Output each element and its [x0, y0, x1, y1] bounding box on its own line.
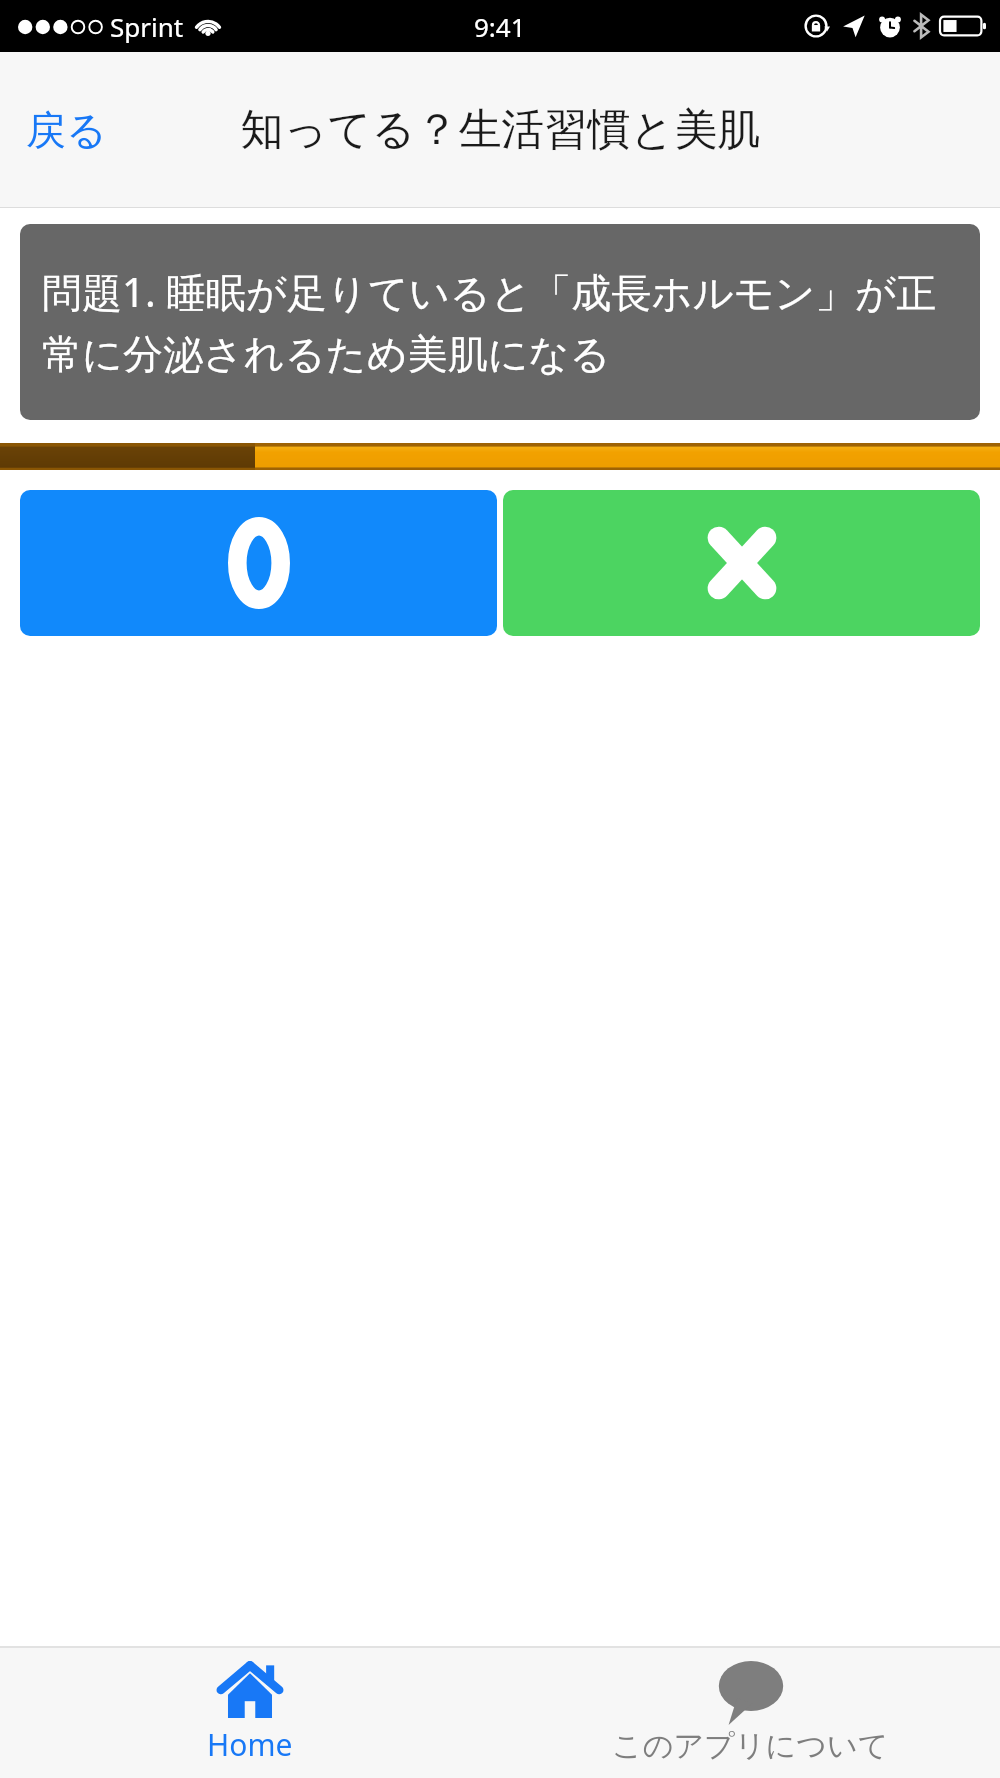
- staticText: このアプリについて: [612, 1727, 889, 1765]
- button[interactable]: Maru, correct answer: [20, 490, 497, 636]
- staticText: Home: [207, 1724, 293, 1765]
- staticText: 戻る: [26, 105, 107, 155]
- button[interactable]: Home: [0, 1648, 500, 1778]
- staticText: 問題1. 睡眠が足りていると「成長ホルモン」が正常に分泌されるため美肌になる: [42, 264, 958, 380]
- staticText: Sprint: [110, 9, 184, 44]
- button[interactable]: 戻る: [10, 93, 123, 167]
- button[interactable]: このアプリについて: [500, 1648, 1000, 1778]
- button[interactable]: Batsu, wrong answer: [503, 490, 980, 636]
- staticText: 9:41: [474, 9, 526, 44]
- staticText: 知ってる？生活習慣と美肌: [240, 103, 761, 157]
